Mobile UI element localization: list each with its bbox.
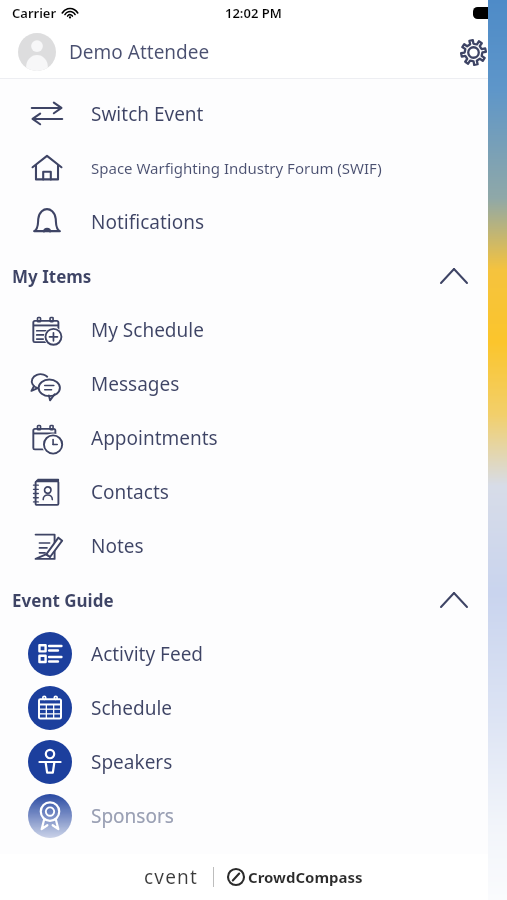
button[interactable]: Schedule — [0, 681, 507, 735]
staticText: Space Warfighting Industry Forum (SWIF) — [91, 158, 382, 178]
staticText: Appointments — [91, 425, 218, 451]
button[interactable]: Space Warfighting Industry Forum (SWIF) — [0, 141, 507, 195]
staticText: Notes — [91, 533, 144, 559]
button[interactable] — [18, 33, 56, 71]
staticText: cvent — [144, 864, 199, 890]
button[interactable]: Speakers — [0, 735, 507, 789]
staticText: Carrier — [12, 4, 57, 22]
staticText: Notifications — [91, 209, 205, 235]
button[interactable]: Settings — [453, 32, 493, 72]
staticText: Switch Event — [91, 101, 204, 127]
staticText: CrowdCompass — [248, 867, 363, 887]
staticText: 12:02 PM — [225, 4, 282, 22]
staticText: Event Guide — [12, 589, 114, 612]
staticText: Contacts — [91, 479, 169, 505]
staticText: My Schedule — [91, 317, 204, 343]
button[interactable]: Messages — [0, 357, 507, 411]
button[interactable]: Event Guide — [12, 573, 467, 627]
button[interactable]: Notifications — [0, 195, 507, 249]
button[interactable]: Notes — [0, 519, 507, 573]
button[interactable]: Switch Event — [0, 87, 507, 141]
button[interactable]: Appointments — [0, 411, 507, 465]
button[interactable]: Activity Feed — [0, 627, 507, 681]
staticText: Activity Feed — [91, 641, 204, 667]
staticText: Sponsors — [91, 803, 174, 829]
staticText: Messages — [91, 371, 180, 397]
staticText: Speakers — [91, 749, 173, 775]
button[interactable]: Sponsors — [0, 789, 507, 843]
staticText: Demo Attendee — [69, 39, 210, 65]
staticText: Schedule — [91, 695, 173, 721]
button[interactable]: My Items — [12, 249, 467, 303]
button[interactable]: Contacts — [0, 465, 507, 519]
button[interactable]: My Schedule — [0, 303, 507, 357]
staticText: My Items — [12, 265, 92, 288]
